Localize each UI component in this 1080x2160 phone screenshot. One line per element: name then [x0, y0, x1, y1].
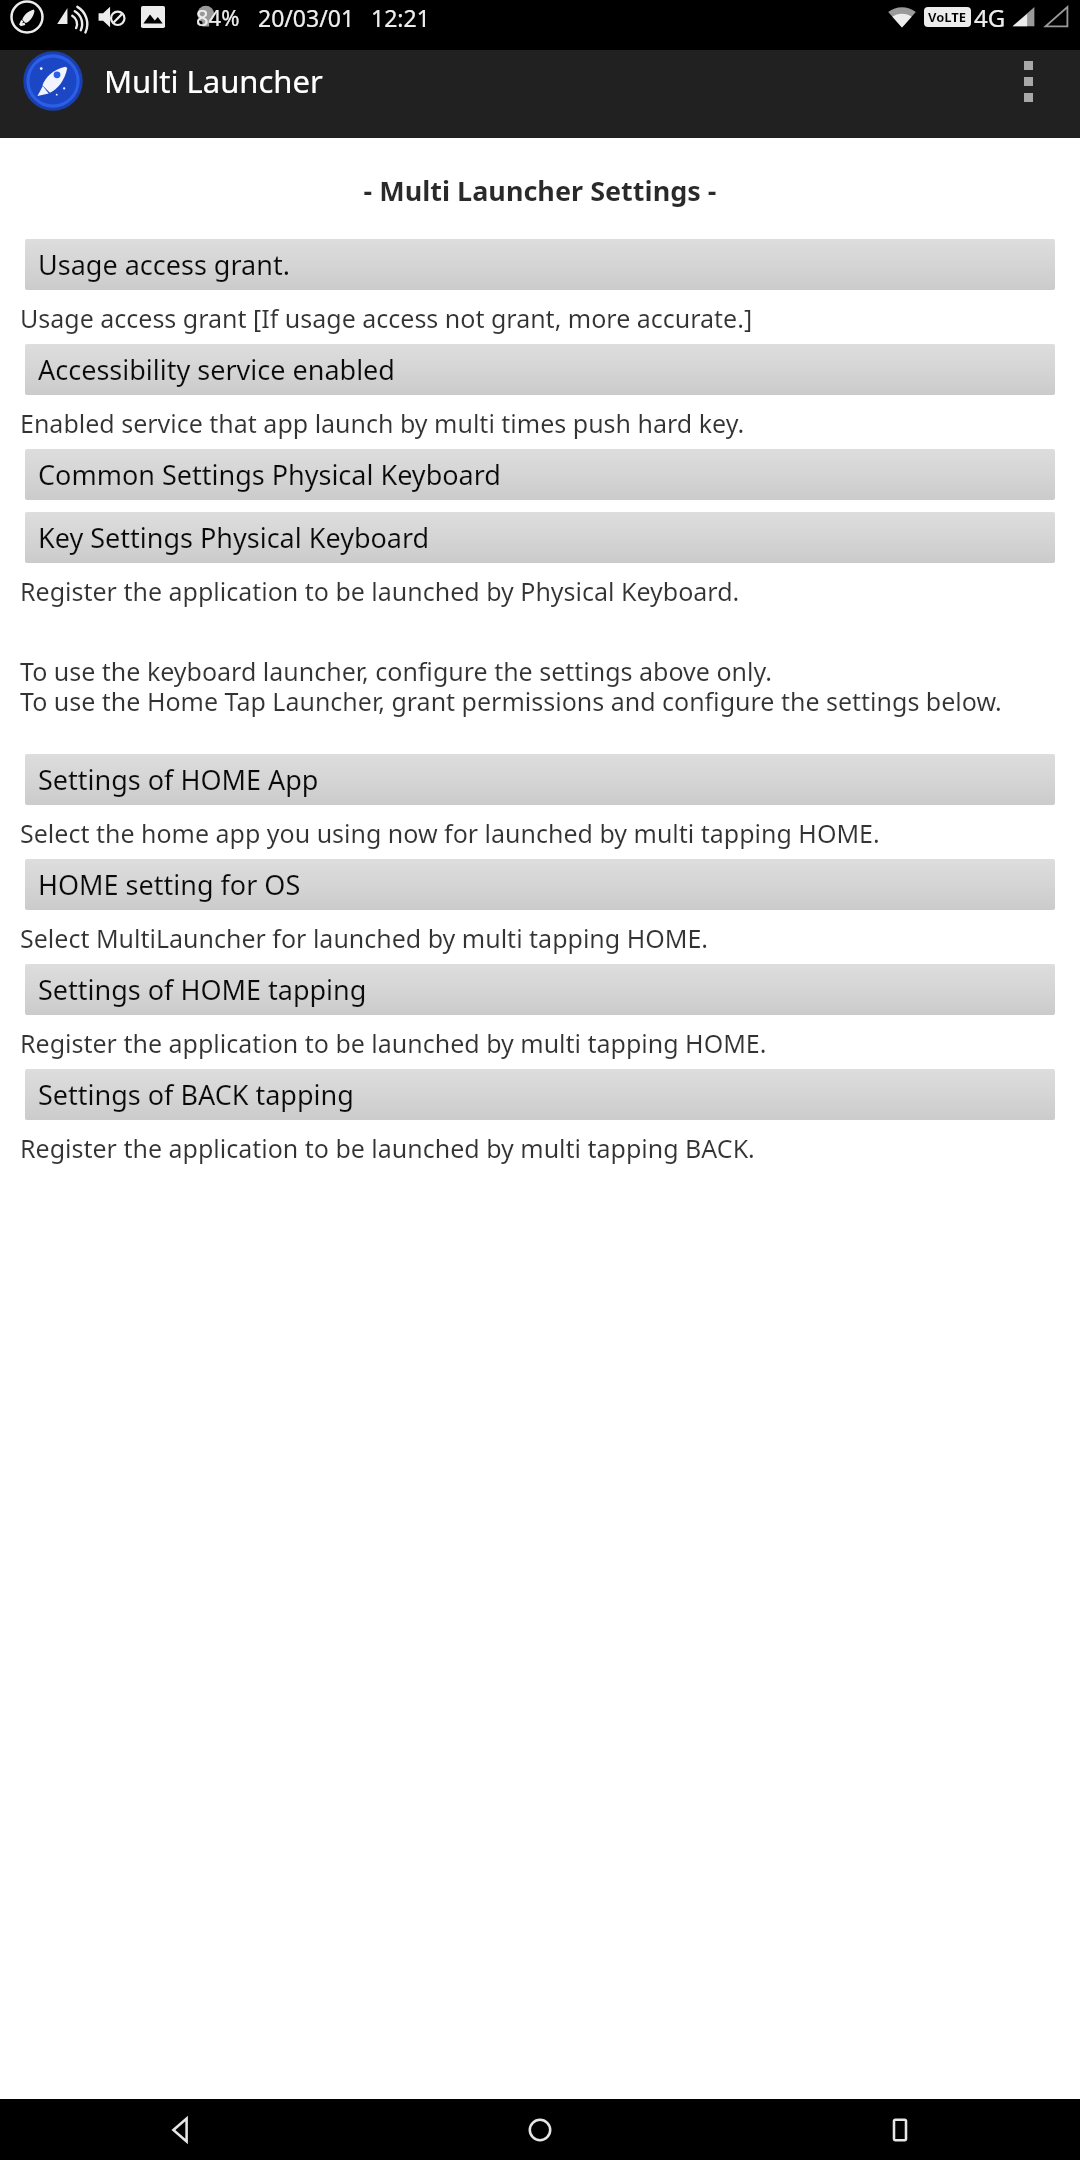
button[interactable]: Recents	[720, 2099, 1080, 2160]
staticText: Settings of BACK tapping	[38, 1076, 354, 1113]
staticText: 12:21	[371, 2, 430, 33]
button[interactable]: Usage access grant.	[25, 239, 1055, 290]
staticText: Register the application to be launched …	[20, 1131, 1064, 1165]
staticText: Register the application to be launched …	[20, 1026, 1064, 1060]
staticText: To use the keyboard launcher, configure …	[20, 654, 1064, 719]
button[interactable]: Home	[360, 2099, 720, 2160]
staticText: Usage access grant [If usage access not …	[20, 301, 1064, 335]
staticText: Key Settings Physical Keyboard	[38, 519, 430, 556]
staticText: Settings of HOME tapping	[38, 971, 367, 1008]
staticText: Settings of HOME App	[38, 761, 319, 798]
button[interactable]: Settings of HOME tapping	[25, 964, 1055, 1015]
staticText: - Multi Launcher Settings -	[0, 172, 1080, 209]
staticText: Select MultiLauncher for launched by mul…	[20, 921, 1064, 955]
staticText: Multi Launcher	[104, 60, 323, 102]
button[interactable]: Settings of BACK tapping	[25, 1069, 1055, 1120]
staticText: Usage access grant.	[38, 246, 290, 283]
button[interactable]: Settings of HOME App	[25, 754, 1055, 805]
staticText: Accessibility service enabled	[38, 351, 395, 388]
staticText: VoLTE	[928, 8, 967, 26]
button[interactable]: More options	[1000, 53, 1056, 109]
staticText: 20/03/01	[258, 2, 355, 33]
button[interactable]: Back	[0, 2099, 360, 2160]
button[interactable]: Key Settings Physical Keyboard	[25, 512, 1055, 563]
staticText: Common Settings Physical Keyboard	[38, 456, 501, 493]
staticText: HOME setting for OS	[38, 866, 301, 903]
button[interactable]: Common Settings Physical Keyboard	[25, 449, 1055, 500]
staticText: Enabled service that app launch by multi…	[20, 406, 1064, 440]
button[interactable]: Accessibility service enabled	[25, 344, 1055, 395]
staticText: Register the application to be launched …	[20, 574, 1064, 608]
button[interactable]: HOME setting for OS	[25, 859, 1055, 910]
staticText: Select the home app you using now for la…	[20, 816, 1064, 850]
staticText: 4G	[974, 1, 1006, 34]
staticText: 84%	[196, 2, 240, 32]
